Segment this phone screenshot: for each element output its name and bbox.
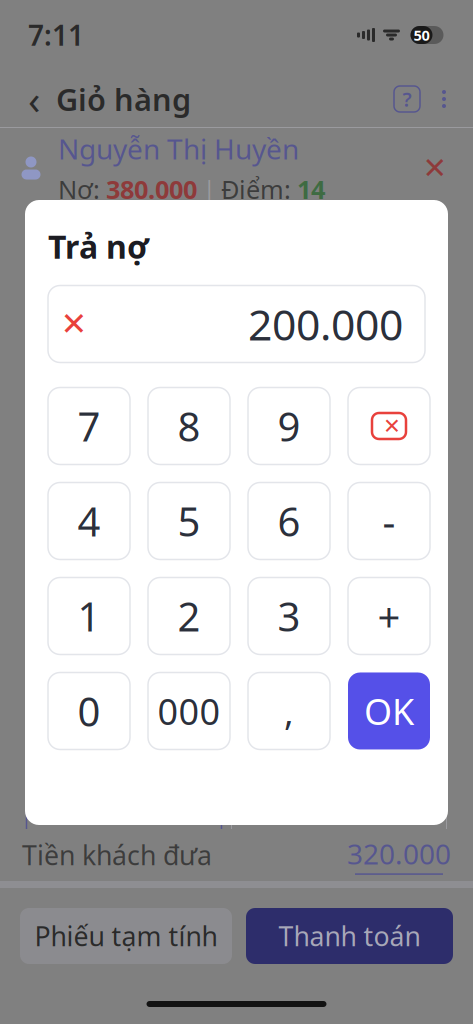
button[interactable]: 9	[248, 387, 330, 464]
button[interactable]: Remove customer	[413, 146, 457, 190]
staticText: 7:11	[28, 16, 84, 54]
staticText: 5	[177, 494, 200, 547]
staticText: Giỏ hàng	[56, 79, 191, 119]
staticText: 7	[77, 399, 100, 452]
button[interactable]: ,	[248, 672, 330, 749]
staticText: -	[382, 494, 395, 547]
staticText: 380.000	[106, 172, 197, 206]
staticText: 2	[177, 589, 200, 642]
staticText: 3	[277, 589, 300, 642]
button[interactable]: 1	[48, 577, 130, 654]
button[interactable]: 7	[48, 387, 130, 464]
staticText: ‹	[28, 72, 40, 125]
button[interactable]: Help	[387, 77, 427, 121]
staticText: ,	[284, 687, 294, 735]
button[interactable]: 000	[148, 672, 230, 749]
button[interactable]: OK	[348, 672, 430, 749]
button[interactable]: 8	[148, 387, 230, 464]
button[interactable]: 4	[48, 482, 130, 559]
staticText: ✕	[422, 151, 447, 185]
staticText: Điểm:	[221, 172, 291, 206]
button[interactable]: 6	[248, 482, 330, 559]
button[interactable]: 0	[48, 672, 130, 749]
button[interactable]: More options	[427, 77, 461, 121]
staticText: 1	[77, 589, 100, 642]
staticText: Tiền khách đưa	[22, 837, 212, 873]
staticText: |	[203, 174, 215, 204]
staticText: 8	[177, 399, 200, 452]
button[interactable]: 320.000	[347, 835, 451, 875]
button[interactable]: 2	[148, 577, 230, 654]
staticText: OK	[364, 687, 414, 735]
button[interactable]: Delete	[348, 387, 430, 464]
button[interactable]: 5	[148, 482, 230, 559]
staticText: 50	[413, 25, 429, 45]
button[interactable]: 3	[248, 577, 330, 654]
staticText: ✕	[60, 306, 87, 342]
button[interactable]: Clear amount	[48, 294, 100, 354]
staticText: ?	[402, 86, 411, 112]
staticText: Nguyễn Thị Huyền	[58, 130, 299, 167]
button[interactable]: +	[348, 577, 430, 654]
staticText: 14	[297, 172, 325, 206]
staticText: +	[377, 589, 400, 642]
staticText: Trả nợ	[48, 225, 149, 267]
staticText: 6	[277, 494, 300, 547]
button[interactable]: Thanh toán	[246, 908, 453, 964]
staticText: 4	[77, 494, 100, 547]
staticText: 200.000	[248, 296, 403, 352]
staticText: 320.000	[347, 835, 451, 872]
staticText: Nợ:	[58, 172, 100, 206]
staticText: ✕	[383, 414, 401, 438]
button[interactable]: -	[348, 482, 430, 559]
button[interactable]: Phiếu tạm tính	[20, 908, 232, 964]
staticText: 0	[77, 684, 100, 737]
staticText: 000	[157, 687, 220, 735]
staticText: Thanh toán	[278, 918, 420, 954]
staticText: 9	[277, 399, 300, 452]
staticText: Phiếu tạm tính	[34, 918, 217, 954]
button[interactable]: Back	[12, 77, 56, 121]
